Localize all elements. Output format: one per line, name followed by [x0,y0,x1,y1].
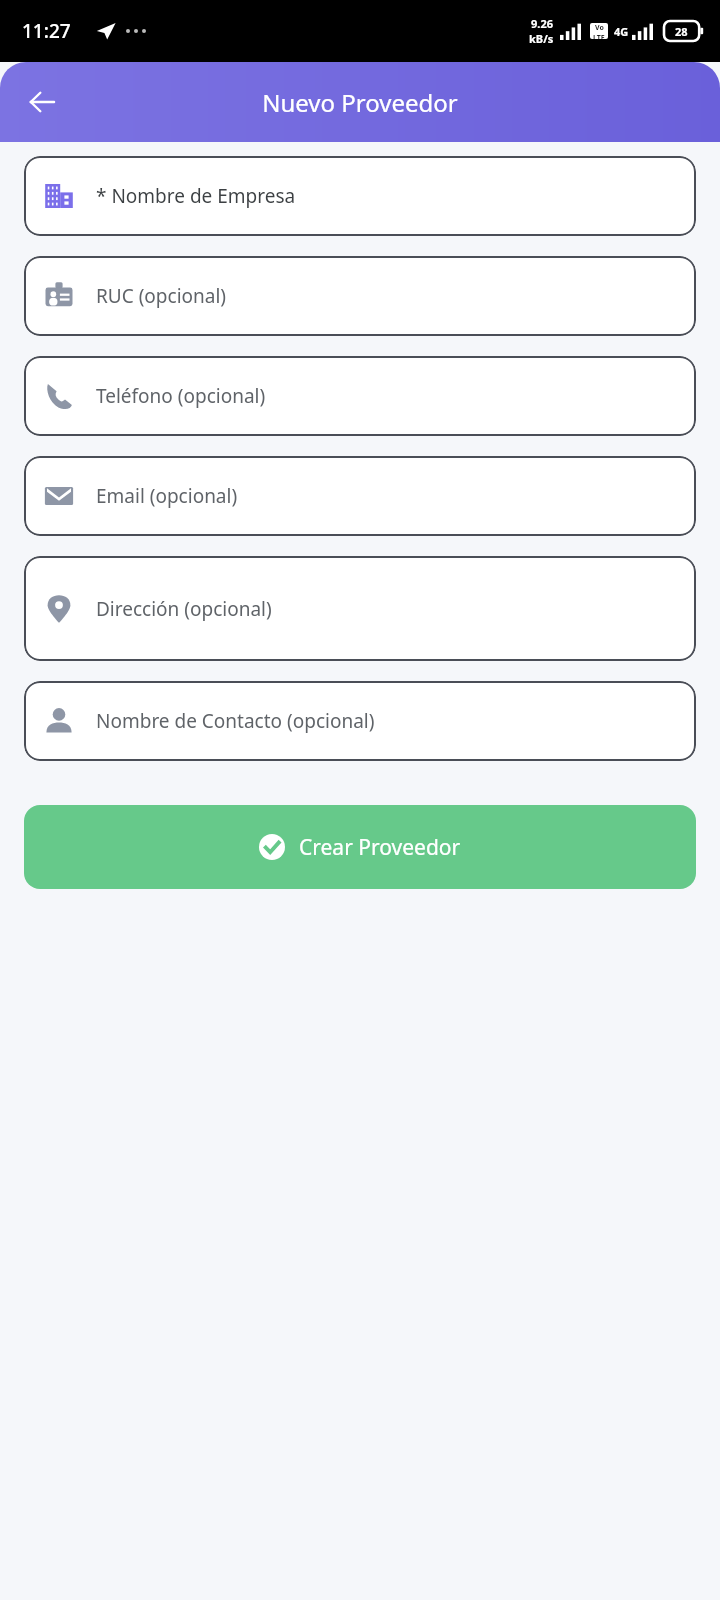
staticText: RUC (opcional) [96,283,227,309]
staticText: 4G [614,24,629,39]
staticText: LTE [593,33,605,39]
staticText: 9.26 [531,16,553,31]
button[interactable]: Nombre de Contacto (opcional) [24,681,696,761]
staticText: kB/s [529,31,554,46]
staticText: 28 [675,24,688,39]
button[interactable]: Back [14,74,70,130]
button[interactable]: Crear Proveedor [24,805,696,889]
button[interactable]: Teléfono (opcional) [24,356,696,436]
staticText: 11:27 [22,18,71,44]
button[interactable]: Dirección (opcional) [24,556,696,661]
staticText: Email (opcional) [96,483,238,509]
button[interactable]: Email (opcional) [24,456,696,536]
staticText: Teléfono (opcional) [96,383,266,409]
staticText: Nombre de Contacto (opcional) [96,708,375,734]
staticText: * Nombre de Empresa [96,183,296,209]
staticText: Nuevo Proveedor [262,86,458,119]
staticText: Crear Proveedor [299,833,461,862]
button[interactable]: RUC (opcional) [24,256,696,336]
staticText: Dirección (opcional) [96,596,272,622]
button[interactable]: * Nombre de Empresa [24,156,696,236]
staticText: Vo [595,23,604,33]
